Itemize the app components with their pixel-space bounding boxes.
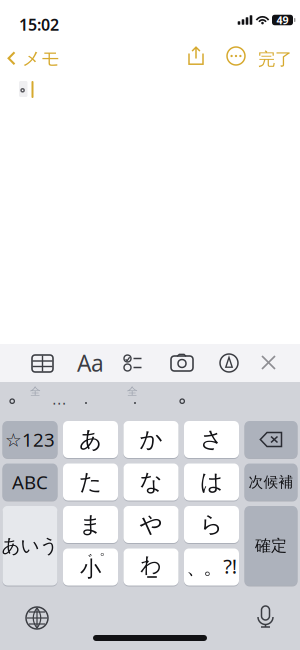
button[interactable]: 完了 [252, 42, 298, 76]
staticText: か [139, 426, 162, 453]
staticText: ゛ [78, 551, 93, 569]
staticText: あ [79, 426, 102, 453]
staticText: さ [200, 426, 223, 453]
button[interactable]: メモ [1, 42, 66, 75]
staticText: ☆123 [5, 427, 55, 452]
button[interactable]: 閉じる [254, 348, 283, 377]
button[interactable]: マークアップ [213, 347, 245, 379]
button[interactable]: 音声入力 [248, 598, 282, 636]
button[interactable]: ABC [2, 463, 57, 500]
staticText: は [200, 468, 223, 496]
button[interactable]: Aa [70, 341, 111, 385]
button[interactable]: は [184, 463, 239, 500]
staticText: 小 [80, 556, 101, 582]
staticText: メモ [22, 47, 60, 70]
button[interactable]: チェックリスト [117, 347, 149, 379]
staticText: 15:02 [19, 14, 59, 35]
button[interactable]: 削除 [244, 421, 297, 458]
button[interactable]: あいう [2, 506, 57, 585]
button[interactable]: わ [123, 548, 178, 585]
staticText: ま [79, 511, 102, 538]
button[interactable]: さ [184, 421, 239, 458]
button[interactable]: 、。?! [184, 548, 239, 585]
staticText: ゜ [90, 551, 105, 569]
button[interactable]: 確定 [244, 506, 297, 585]
button[interactable]: た [63, 463, 118, 500]
button[interactable]: ら [184, 506, 239, 543]
staticText: や [139, 511, 162, 538]
staticText: わ [140, 552, 162, 578]
staticText: た [79, 468, 102, 496]
staticText: Aa [77, 348, 104, 378]
staticText: 全 [127, 385, 138, 398]
button[interactable]: 共有 [182, 40, 210, 71]
button[interactable]: カメラ [164, 348, 200, 379]
button[interactable]: か [123, 421, 178, 458]
button[interactable]: 次候補 [244, 463, 297, 500]
staticText: な [139, 468, 162, 496]
button[interactable]: な [123, 463, 178, 500]
button[interactable]: 小゛゜ [63, 548, 118, 585]
staticText: 完了 [258, 48, 292, 70]
staticText: 49 [276, 13, 288, 27]
staticText: ら [200, 511, 223, 538]
staticText: ⋯ [52, 395, 67, 412]
staticText: 、。 [186, 555, 223, 579]
button[interactable]: ☆123 [2, 421, 57, 458]
staticText: あいう [1, 534, 58, 557]
button[interactable]: 表 [25, 348, 60, 379]
button[interactable]: あ [63, 421, 118, 458]
staticText: ABC [12, 470, 48, 494]
button[interactable]: 地球儀 [18, 599, 56, 637]
staticText: ?! [223, 553, 237, 579]
button[interactable]: ま [63, 506, 118, 543]
button[interactable]: その他 [221, 41, 251, 71]
button[interactable]: や [123, 506, 178, 543]
staticText: 次候補 [248, 473, 293, 491]
staticText: 確定 [255, 536, 287, 556]
staticText: 全 [30, 385, 41, 398]
